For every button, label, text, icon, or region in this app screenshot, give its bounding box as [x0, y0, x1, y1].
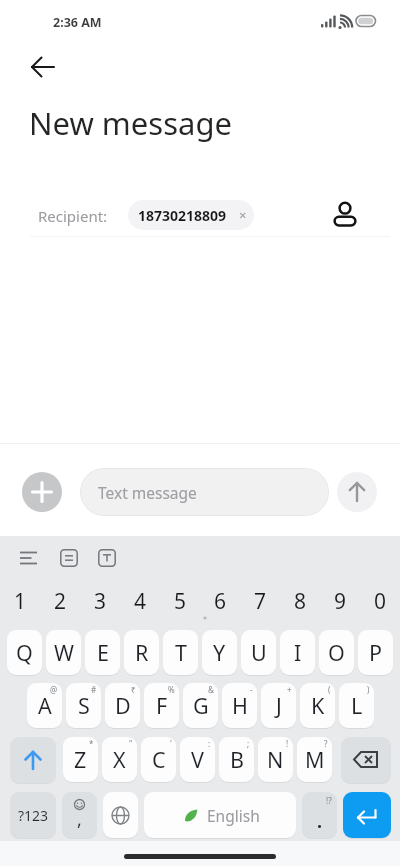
- button[interactable]: English: [144, 792, 296, 838]
- button[interactable]: H: [222, 683, 257, 728]
- staticText: O: [328, 638, 345, 667]
- staticText: ,: [77, 807, 82, 832]
- staticText: T: [175, 638, 187, 667]
- button[interactable]: I: [280, 630, 315, 675]
- staticText: 1: [14, 587, 27, 616]
- staticText: M: [305, 745, 325, 774]
- button[interactable]: W: [46, 630, 81, 675]
- button[interactable]: !?: [302, 792, 337, 838]
- button[interactable]: 8: [280, 582, 320, 620]
- staticText: 9: [334, 587, 347, 616]
- button[interactable]: E: [85, 630, 120, 675]
- staticText: .: [317, 809, 323, 834]
- button[interactable]: S: [66, 683, 101, 728]
- button[interactable]: 9: [320, 582, 360, 620]
- staticText: R: [135, 638, 149, 667]
- staticText: ?: [324, 738, 328, 749]
- staticText: #: [91, 684, 97, 695]
- button[interactable]: O: [319, 630, 354, 675]
- button[interactable]: 2: [40, 582, 80, 620]
- staticText: N: [267, 745, 284, 774]
- button[interactable]: P: [358, 630, 393, 675]
- button[interactable]: ,: [62, 792, 97, 838]
- button[interactable]: 6: [200, 582, 240, 620]
- button[interactable]: [60, 549, 78, 567]
- staticText: A: [38, 691, 52, 720]
- staticText: English: [207, 805, 260, 826]
- button[interactable]: 4: [120, 582, 160, 620]
- staticText: D: [115, 691, 131, 720]
- button[interactable]: 0: [360, 582, 400, 620]
- button[interactable]: R: [124, 630, 159, 675]
- button[interactable]: A: [27, 683, 62, 728]
- staticText: ?123: [18, 806, 49, 825]
- staticText: P: [369, 638, 383, 667]
- button[interactable]: [28, 53, 58, 81]
- button[interactable]: Y: [202, 630, 237, 675]
- button[interactable]: [332, 198, 358, 228]
- button[interactable]: M: [297, 737, 332, 782]
- button[interactable]: C: [141, 737, 176, 782]
- staticText: B: [230, 745, 244, 774]
- staticText: 0: [374, 587, 387, 616]
- staticText: -: [250, 684, 253, 695]
- staticText: L: [351, 691, 363, 720]
- button[interactable]: N: [258, 737, 293, 782]
- button[interactable]: G: [183, 683, 218, 728]
- button[interactable]: F: [144, 683, 179, 728]
- button[interactable]: 3: [80, 582, 120, 620]
- staticText: E: [97, 638, 109, 667]
- button[interactable]: [341, 737, 391, 783]
- button[interactable]: [22, 472, 62, 512]
- staticText: Z: [74, 745, 87, 774]
- button[interactable]: 18730218809: [128, 200, 254, 230]
- staticText: X: [113, 745, 126, 774]
- staticText: New message: [29, 102, 232, 144]
- staticText: *: [89, 738, 94, 749]
- staticText: ): [367, 684, 370, 695]
- staticText: !?: [326, 795, 332, 806]
- staticText: I: [294, 638, 302, 667]
- button[interactable]: [98, 549, 116, 567]
- button[interactable]: [337, 472, 377, 512]
- button[interactable]: [20, 549, 38, 567]
- button[interactable]: T: [163, 630, 198, 675]
- button[interactable]: Text message: [80, 468, 329, 516]
- staticText: 18730218809: [138, 206, 227, 225]
- staticText: 4: [134, 587, 147, 616]
- button[interactable]: Q: [7, 630, 42, 675]
- staticText: &: [208, 684, 214, 695]
- button[interactable]: J: [261, 683, 296, 728]
- staticText: 6: [214, 587, 227, 616]
- staticText: Y: [213, 638, 226, 667]
- staticText: 3: [94, 587, 107, 616]
- button[interactable]: X: [102, 737, 137, 782]
- button[interactable]: 1: [0, 582, 40, 620]
- staticText: @: [50, 684, 58, 695]
- button[interactable]: Z: [63, 737, 98, 782]
- button[interactable]: U: [241, 630, 276, 675]
- staticText: ': [170, 738, 172, 749]
- button[interactable]: B: [219, 737, 254, 782]
- staticText: Text message: [98, 482, 197, 503]
- staticText: 5: [174, 587, 187, 616]
- button[interactable]: D: [105, 683, 140, 728]
- staticText: C: [152, 745, 166, 774]
- staticText: ×: [239, 206, 247, 224]
- button[interactable]: [343, 792, 391, 838]
- button[interactable]: L: [339, 683, 374, 728]
- button[interactable]: K: [300, 683, 335, 728]
- button[interactable]: [10, 737, 56, 783]
- button[interactable]: V: [180, 737, 215, 782]
- button[interactable]: ?123: [10, 792, 56, 838]
- staticText: Recipient:: [38, 206, 108, 226]
- button[interactable]: 5: [160, 582, 200, 620]
- staticText: 8: [294, 587, 307, 616]
- staticText: +: [287, 684, 292, 695]
- button[interactable]: 7: [240, 582, 280, 620]
- staticText: Q: [16, 638, 33, 667]
- staticText: (: [328, 684, 331, 695]
- staticText: K: [311, 691, 325, 720]
- staticText: W: [54, 638, 74, 667]
- button[interactable]: [103, 792, 138, 838]
